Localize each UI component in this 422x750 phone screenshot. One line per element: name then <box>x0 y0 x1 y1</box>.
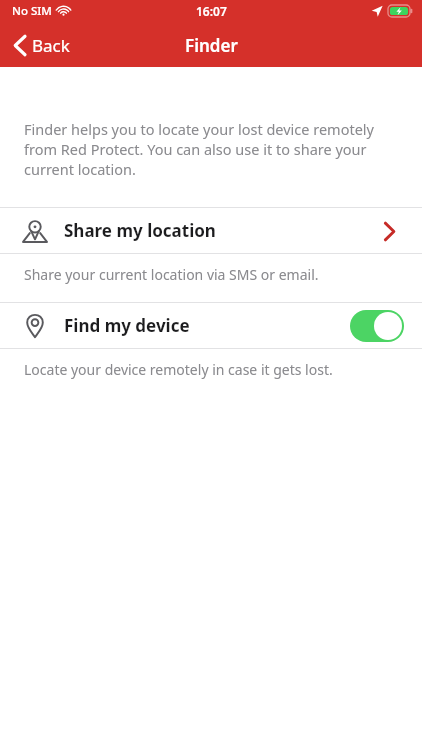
staticText: Find my device <box>64 314 190 337</box>
other: Share location map pin <box>22 218 48 244</box>
staticText: Share your current location via SMS or e… <box>24 265 398 284</box>
other: Find my device map pin <box>22 313 48 339</box>
button[interactable]: Share location map pin <box>0 208 422 253</box>
staticText: Back <box>32 34 70 57</box>
button[interactable]: Find my device toggle, on <box>350 310 404 342</box>
staticText: Share my location <box>64 219 216 242</box>
staticText: Locate your device remotely in case it g… <box>24 360 398 379</box>
button[interactable]: Back <box>10 30 74 61</box>
staticText: 16:07 <box>196 3 227 19</box>
staticText: No SIM <box>12 3 52 19</box>
button[interactable]: Open share my location <box>374 216 404 246</box>
button[interactable]: Find my device map pin <box>0 303 422 348</box>
staticText: Finder helps you to locate your lost dev… <box>24 119 398 179</box>
staticText: Finder <box>185 34 238 57</box>
